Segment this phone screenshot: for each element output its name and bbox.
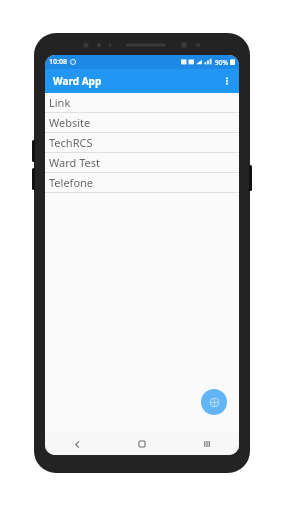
button[interactable]: Recent apps [174, 433, 239, 455]
staticText: Link [49, 95, 71, 110]
button[interactable]: TechRCS [45, 133, 239, 152]
button[interactable]: Website [45, 113, 239, 132]
staticText: 10:08 [49, 57, 67, 67]
button[interactable]: Telefone [45, 173, 239, 192]
staticText: TechRCS [49, 135, 93, 150]
button[interactable]: Back [45, 433, 109, 455]
button[interactable]: Add [201, 389, 227, 415]
button[interactable]: Home [109, 433, 174, 455]
staticText: 90% [215, 58, 228, 67]
staticText: Ward Test [49, 155, 100, 170]
staticText: Website [49, 115, 91, 130]
button[interactable]: Ward Test [45, 153, 239, 172]
button[interactable]: More options [215, 69, 239, 93]
staticText: Telefone [49, 175, 94, 190]
staticText: Ward App [53, 74, 102, 88]
button[interactable]: Link [45, 93, 239, 112]
